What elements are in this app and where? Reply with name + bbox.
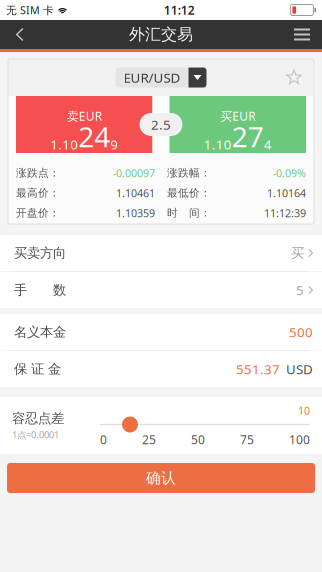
staticText: -0.09% — [273, 166, 306, 180]
staticText: 100 — [289, 431, 310, 447]
staticText: 容忍点差 — [12, 410, 64, 426]
staticText: EUR/USD — [123, 69, 180, 86]
staticText: 0 — [100, 431, 107, 447]
button[interactable]: 确认 — [7, 463, 315, 493]
button[interactable]: 名义本金 — [0, 314, 322, 350]
staticText: 1.10461 — [116, 186, 155, 200]
staticText: 1.10 — [50, 135, 78, 153]
staticText: 最低价： — [167, 186, 211, 199]
staticText: 买 — [291, 245, 304, 261]
button[interactable]: 菜单 — [282, 20, 322, 49]
staticText: 手 数 — [14, 282, 66, 298]
staticText: 确认 — [146, 469, 176, 487]
staticText: 10 — [298, 403, 310, 418]
staticText: USD — [280, 360, 313, 378]
staticText: 2.5 — [151, 116, 171, 133]
button[interactable]: 买卖方向 — [0, 235, 322, 271]
staticText: 最高价： — [16, 186, 60, 199]
staticText: 买EUR — [220, 108, 255, 124]
staticText: 75 — [240, 431, 254, 447]
staticText: 卖EUR — [67, 108, 102, 124]
staticText: 1.10 — [204, 135, 232, 153]
staticText: -0.00097 — [113, 166, 155, 180]
staticText: 500 — [289, 323, 313, 341]
button[interactable]: 手 数 — [0, 272, 322, 308]
staticText: 开盘价： — [16, 206, 60, 219]
staticText: 无 SIM 卡 — [6, 3, 54, 17]
staticText: 1.10164 — [267, 186, 306, 200]
staticText: 4 — [264, 135, 272, 153]
staticText: 买卖方向 — [14, 245, 66, 261]
button[interactable]: 收藏 — [282, 65, 306, 89]
staticText: 保 证 金 — [14, 361, 61, 377]
staticText: 涨跌幅： — [167, 166, 211, 179]
staticText: 1点=0.0001 — [12, 428, 59, 441]
button[interactable]: 返回 — [0, 20, 40, 49]
staticText: 名义本金 — [14, 324, 66, 340]
staticText: 涨跌点： — [16, 166, 60, 179]
staticText: 50 — [191, 431, 205, 447]
staticText: 27 — [232, 118, 264, 155]
staticText: 25 — [142, 431, 156, 447]
staticText: 1.10359 — [116, 206, 155, 220]
staticText: 551.37 — [236, 360, 280, 378]
button[interactable]: 保 证 金 — [0, 351, 322, 387]
button[interactable]: EUR/USD — [115, 67, 206, 87]
staticText: 5 — [296, 281, 304, 299]
staticText: 时 间： — [167, 206, 211, 219]
staticText: 9 — [110, 135, 118, 153]
staticText: 11:12:39 — [264, 206, 306, 220]
staticText: 24 — [78, 118, 110, 155]
staticText: 外汇交易 — [129, 25, 193, 44]
staticText: 11:12 — [164, 2, 195, 18]
